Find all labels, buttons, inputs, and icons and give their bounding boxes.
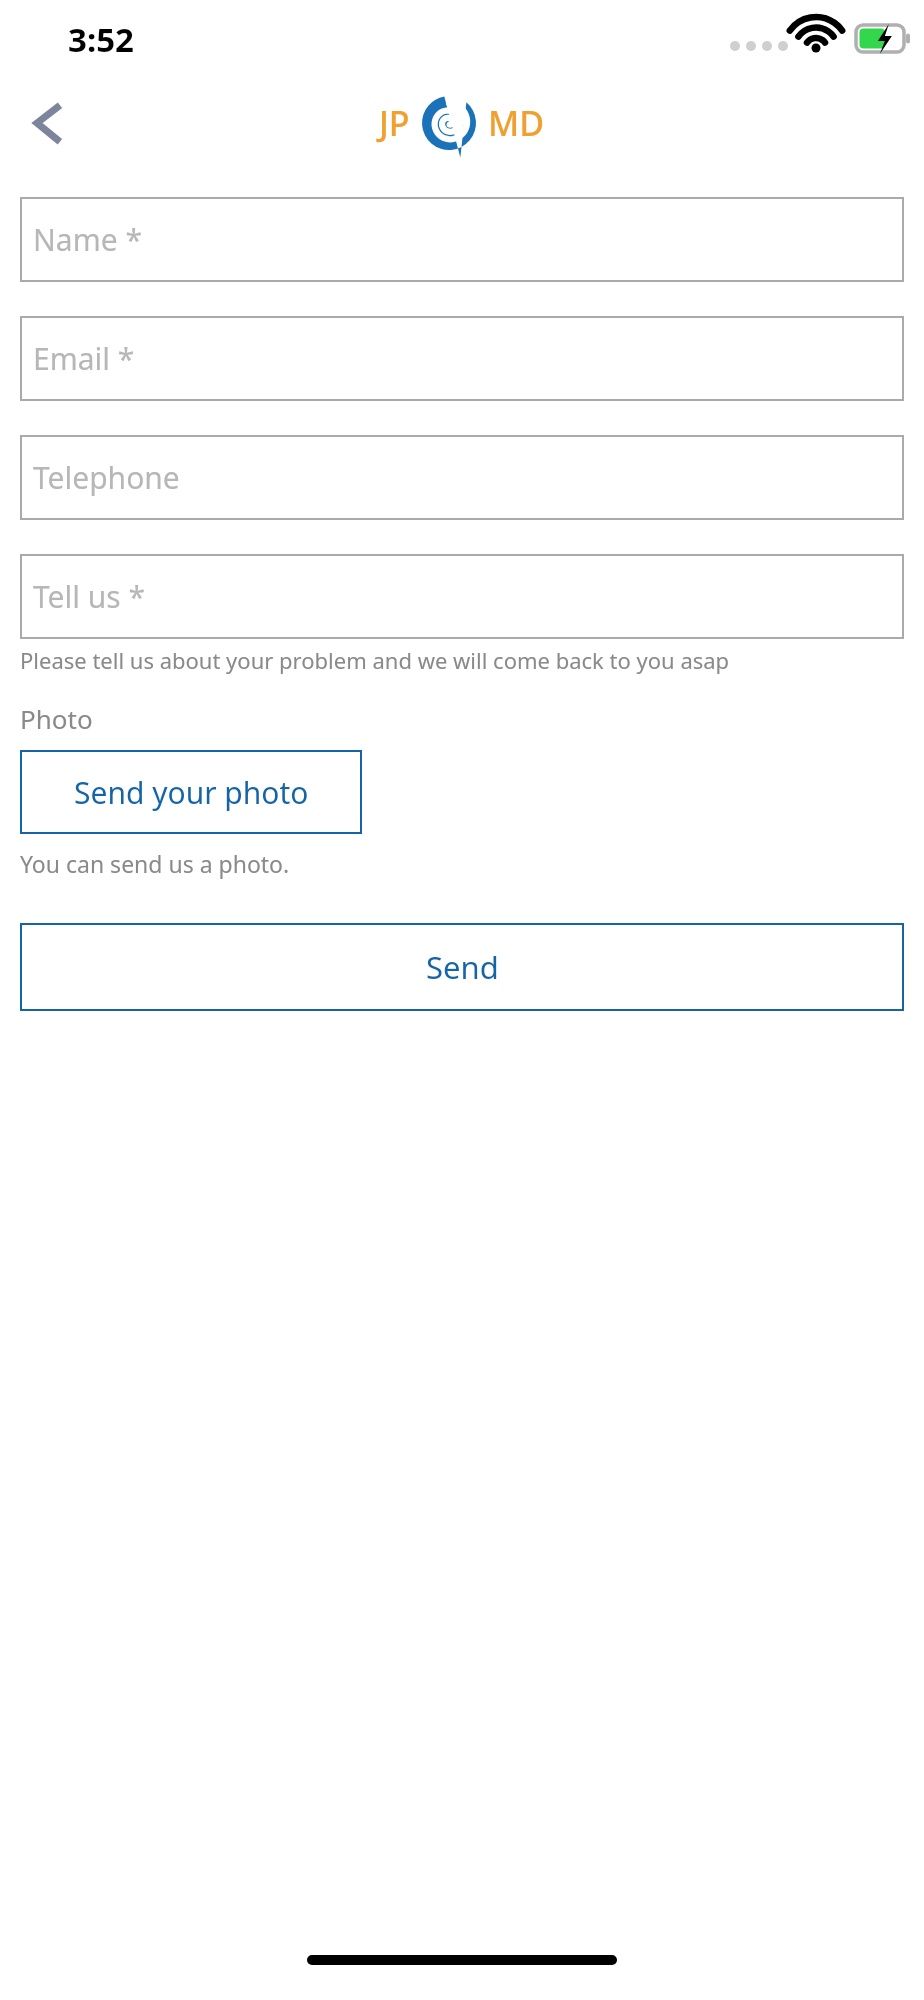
- staticText: Name *: [33, 219, 142, 260]
- staticText: MD: [488, 100, 545, 146]
- button[interactable]: Send: [20, 923, 904, 1011]
- staticText: You can send us a photo.: [20, 848, 290, 879]
- button[interactable]: Telephone: [20, 435, 904, 520]
- staticText: Send: [426, 946, 499, 988]
- staticText: Tell us *: [33, 576, 146, 617]
- button[interactable]: Tell us *: [20, 554, 904, 639]
- staticText: Telephone: [33, 457, 180, 498]
- button[interactable]: Name *: [20, 197, 904, 282]
- staticText: 3:52: [68, 17, 134, 62]
- staticText: Please tell us about your problem and we…: [20, 645, 730, 675]
- staticText: Photo: [20, 701, 93, 736]
- button[interactable]: Back: [14, 89, 82, 157]
- button[interactable]: Email *: [20, 316, 904, 401]
- staticText: Email *: [33, 338, 135, 379]
- button[interactable]: Send your photo: [20, 750, 362, 834]
- staticText: JP: [379, 100, 410, 146]
- staticText: Send your photo: [74, 772, 309, 813]
